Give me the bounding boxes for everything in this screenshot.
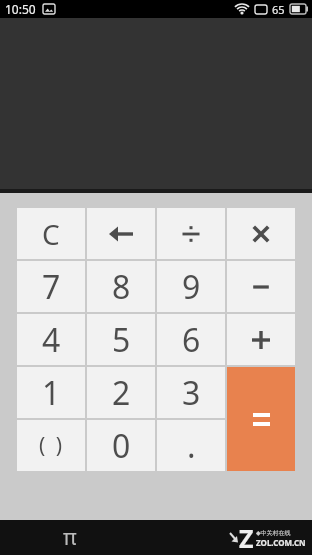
staticText: 6 — [182, 318, 201, 362]
button[interactable]: 7 — [17, 261, 85, 312]
staticText: 65 — [272, 2, 285, 17]
staticText: 1 — [42, 371, 61, 415]
button[interactable]: 4 — [17, 314, 85, 365]
staticText: 4 — [42, 318, 61, 362]
button[interactable] — [157, 208, 225, 259]
staticText: 3 — [182, 371, 201, 415]
button[interactable]: 2 — [87, 367, 155, 418]
staticText: C — [42, 215, 60, 253]
button[interactable] — [227, 208, 295, 259]
button[interactable]: . — [157, 420, 225, 471]
button[interactable]: ( ) — [17, 420, 85, 471]
button[interactable]: 9 — [157, 261, 225, 312]
staticText: 9 — [182, 265, 201, 309]
staticText: ZOL.COM.CN — [256, 537, 306, 548]
staticText: . — [187, 424, 196, 468]
staticText: ◆中关村在线 — [256, 529, 291, 537]
button[interactable]: 8 — [87, 261, 155, 312]
staticText: π — [63, 523, 77, 552]
staticText: ( ) — [39, 431, 63, 460]
staticText: 2 — [112, 371, 131, 415]
staticText: 5 — [112, 318, 131, 362]
button[interactable]: 0 — [87, 420, 155, 471]
button[interactable]: 1 — [17, 367, 85, 418]
button[interactable]: C — [17, 208, 85, 259]
staticText: 8 — [112, 265, 131, 309]
button[interactable]: 5 — [87, 314, 155, 365]
button[interactable] — [87, 208, 155, 259]
button[interactable] — [227, 314, 295, 365]
staticText: 0 — [112, 424, 131, 468]
button[interactable] — [227, 261, 295, 312]
button[interactable]: π — [50, 520, 90, 555]
staticText: 7 — [42, 265, 61, 309]
button[interactable]: 6 — [157, 314, 225, 365]
button[interactable] — [227, 367, 295, 471]
staticText: 10:50 — [5, 1, 36, 17]
staticText: Z — [239, 521, 254, 555]
button[interactable]: 3 — [157, 367, 225, 418]
